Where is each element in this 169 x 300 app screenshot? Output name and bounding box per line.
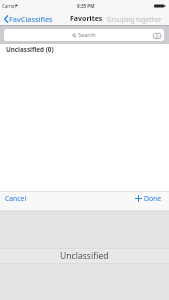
button[interactable]: Unclassified	[0, 249, 169, 263]
staticText: Done	[144, 194, 162, 203]
button[interactable]: Grouping together	[107, 15, 162, 23]
staticText: 9:35 PM	[77, 3, 95, 9]
button[interactable]: Done	[135, 194, 169, 203]
staticText: Unclassified	[60, 250, 109, 262]
button[interactable]: Search	[4, 29, 164, 41]
button[interactable]: FavClassifies	[0, 14, 56, 24]
button[interactable]: Bookmarks	[152, 31, 161, 40]
staticText: FavClassifies	[9, 14, 53, 24]
staticText: Unclassified (0)	[6, 45, 54, 54]
staticText: Favorites	[70, 14, 103, 24]
staticText: Carrier	[2, 3, 17, 9]
button[interactable]: Cancel	[0, 194, 27, 203]
staticText: Search	[78, 31, 96, 39]
